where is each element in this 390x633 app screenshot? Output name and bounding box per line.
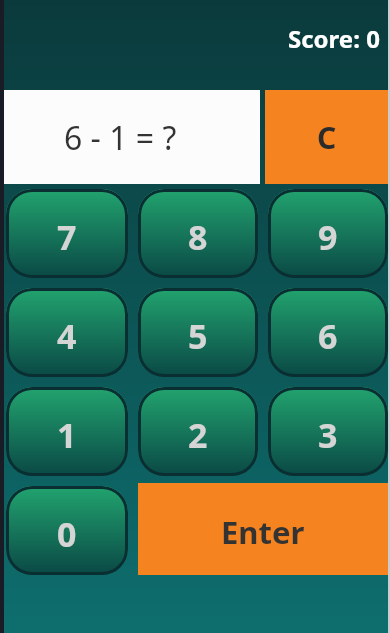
button[interactable]: C — [265, 90, 388, 184]
button[interactable]: 8 — [138, 189, 258, 278]
staticText: 6 - 1 = ? — [64, 116, 177, 160]
staticText: 2 — [188, 412, 208, 458]
staticText: 9 — [318, 214, 338, 260]
staticText: 3 — [318, 412, 338, 458]
staticText: Score: 0 — [288, 22, 380, 55]
button[interactable]: 2 — [138, 387, 258, 476]
button[interactable]: 3 — [268, 387, 388, 476]
staticText: 0 — [57, 511, 77, 557]
button[interactable]: 7 — [6, 189, 128, 278]
button[interactable]: 1 — [6, 387, 128, 476]
button[interactable]: 9 — [268, 189, 388, 278]
staticText: C — [317, 117, 337, 158]
staticText: 4 — [57, 313, 77, 359]
staticText: 5 — [188, 313, 208, 359]
staticText: 7 — [57, 214, 77, 260]
button[interactable]: 0 — [6, 486, 128, 575]
button[interactable]: 5 — [138, 288, 258, 377]
staticText: 6 — [318, 313, 338, 359]
button[interactable]: 6 — [268, 288, 388, 377]
button[interactable]: Enter — [138, 483, 388, 575]
staticText: Enter — [221, 511, 305, 553]
button[interactable]: 4 — [6, 288, 128, 377]
staticText: 1 — [57, 412, 77, 458]
staticText: 8 — [188, 214, 208, 260]
